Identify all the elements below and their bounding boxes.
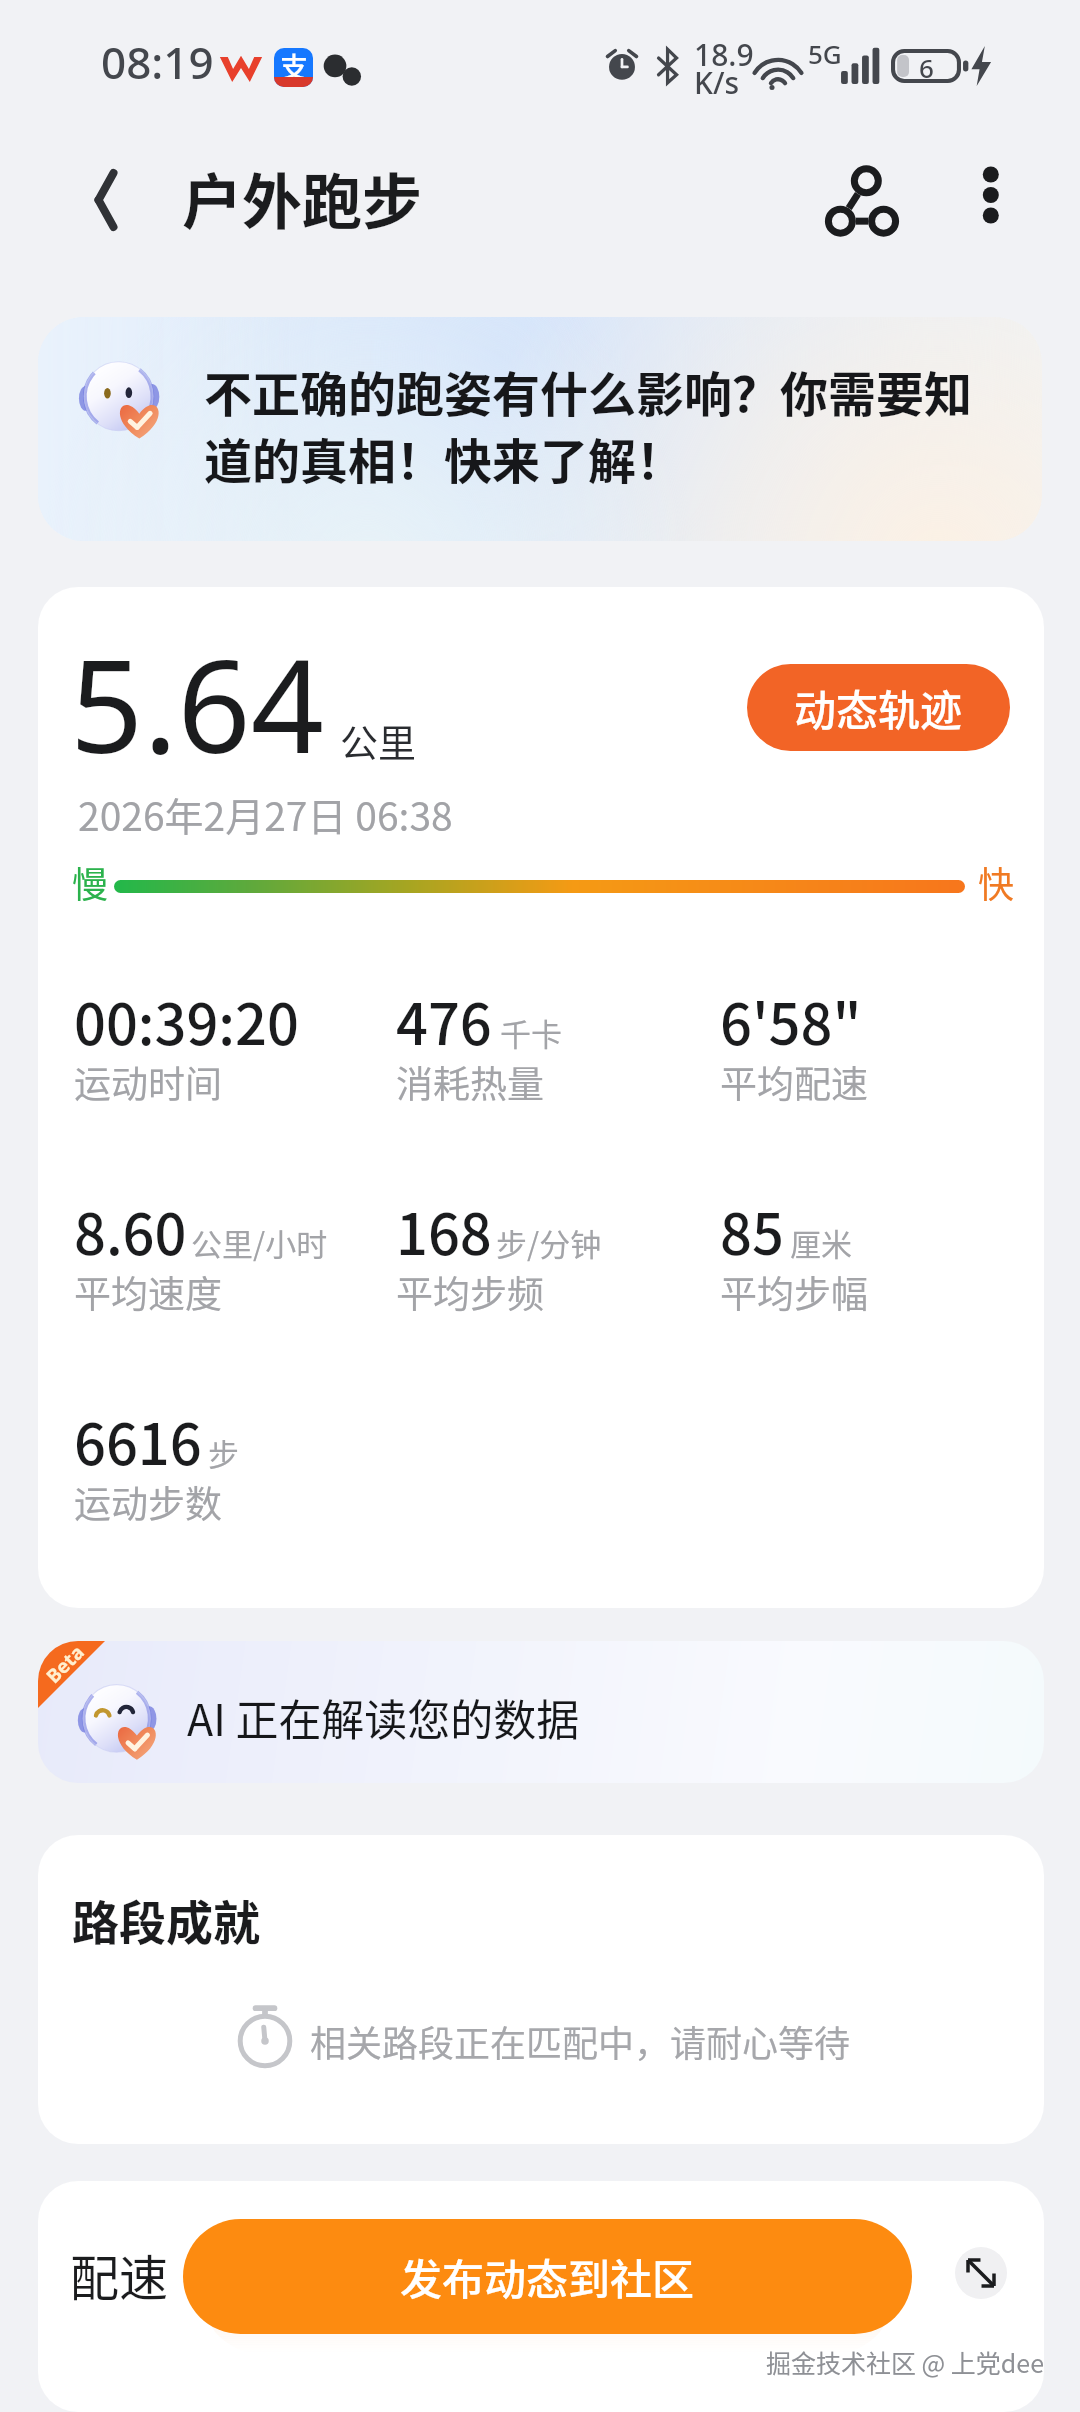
staticText: 公里	[340, 713, 417, 768]
staticText: 慢	[72, 856, 109, 908]
staticText: 不正确的跑姿有什么影响？你需要知	[204, 356, 973, 426]
staticText: 476	[396, 980, 492, 1061]
staticText: 发布动态到社区	[400, 2246, 695, 2307]
staticText: 85	[720, 1190, 784, 1271]
staticText: 6616	[74, 1400, 202, 1481]
staticText: 平均速度	[74, 1265, 222, 1319]
button[interactable]: 不正确的跑姿有什么影响？你需要知	[38, 317, 1042, 541]
staticText: AI 正在解读您的数据	[187, 1686, 580, 1748]
staticText: Beta	[40, 1641, 90, 1689]
staticText: 掘金技术社区 @ 上党dee	[766, 2344, 1044, 2380]
button[interactable]: 动态轨迹	[747, 664, 1010, 751]
staticText: 6'58"	[720, 980, 862, 1061]
staticText: 平均步频	[396, 1265, 544, 1319]
staticText: 运动时间	[74, 1055, 222, 1109]
staticText: 平均步幅	[720, 1265, 868, 1319]
staticText: 00:39:20	[74, 980, 299, 1061]
staticText: 步/分钟	[496, 1220, 602, 1265]
button[interactable]: Beta	[38, 1641, 1044, 1783]
staticText: 6	[919, 50, 934, 85]
staticText: 08:19	[101, 32, 214, 92]
button[interactable]: Share	[826, 165, 898, 237]
staticText: 公里/小时	[191, 1220, 328, 1265]
staticText: 配速	[70, 2239, 169, 2310]
staticText: 支	[280, 48, 309, 85]
staticText: K/s	[694, 62, 740, 103]
staticText: 道的真相！快来了解！	[204, 423, 685, 493]
staticText: 5.64	[70, 616, 324, 790]
staticText: 平均配速	[720, 1055, 868, 1109]
staticText: 运动步数	[74, 1475, 222, 1529]
staticText: 户外跑步	[182, 154, 422, 241]
button[interactable]: Back	[74, 168, 138, 232]
button[interactable]: Expand	[955, 2247, 1007, 2299]
staticText: 18.9	[694, 34, 754, 75]
staticText: 2026年2月27日 06:38	[78, 786, 453, 842]
staticText: 路段成就	[72, 1885, 260, 1953]
staticText: 消耗热量	[396, 1055, 544, 1109]
staticText: 5G	[808, 36, 842, 71]
staticText: 动态轨迹	[794, 677, 963, 738]
staticText: 相关路段正在匹配中，请耐心等待	[310, 2015, 851, 2067]
staticText: 快	[978, 856, 1015, 908]
staticText: 8.60	[74, 1190, 187, 1271]
staticText: 厘米	[790, 1220, 852, 1265]
button[interactable]: More options	[962, 163, 1026, 227]
staticText: 千卡	[500, 1010, 562, 1055]
button[interactable]: 发布动态到社区	[183, 2219, 912, 2334]
staticText: 168	[396, 1190, 492, 1271]
staticText: 步	[208, 1430, 239, 1475]
